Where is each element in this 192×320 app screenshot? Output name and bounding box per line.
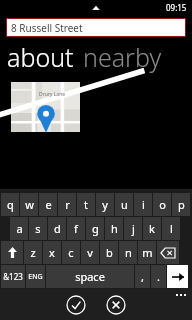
staticText: .: [157, 269, 160, 284]
button[interactable]: l: [162, 217, 180, 240]
button[interactable]: f: [67, 217, 85, 240]
button[interactable]: q: [1, 193, 19, 216]
staticText: n: [125, 245, 132, 260]
staticText: ENG: [28, 272, 43, 282]
staticText: ,: [141, 269, 144, 284]
staticText: o: [159, 197, 166, 212]
button[interactable]: j: [124, 217, 142, 240]
button[interactable]: m: [138, 241, 156, 264]
button[interactable]: d: [48, 217, 66, 240]
button[interactable]: k: [143, 217, 161, 240]
button[interactable]: [167, 265, 188, 288]
button[interactable]: n: [119, 241, 137, 264]
staticText: h: [111, 221, 118, 236]
staticText: v: [87, 245, 93, 260]
button[interactable]: z: [24, 241, 42, 264]
staticText: i: [142, 197, 145, 212]
button[interactable]: h: [105, 217, 123, 240]
button[interactable]: p: [172, 193, 190, 216]
button[interactable]: i: [134, 193, 152, 216]
button[interactable]: v: [81, 241, 99, 264]
button[interactable]: o: [153, 193, 171, 216]
staticText: t: [84, 197, 88, 212]
button[interactable]: x: [43, 241, 61, 264]
button[interactable]: s: [29, 217, 47, 240]
staticText: p: [178, 197, 185, 212]
staticText: e: [45, 197, 52, 212]
button[interactable]: Accept: [65, 294, 87, 316]
button[interactable]: b: [100, 241, 118, 264]
button[interactable]: More options: [176, 294, 186, 296]
button[interactable]: e: [39, 193, 57, 216]
staticText: l: [170, 221, 173, 236]
staticText: 09:15: [166, 2, 187, 13]
button[interactable]: space: [46, 265, 134, 288]
staticText: s: [35, 221, 41, 236]
staticText: x: [49, 245, 55, 260]
staticText: r: [65, 197, 70, 212]
staticText: q: [7, 197, 14, 212]
staticText: b: [106, 245, 113, 260]
button[interactable]: Cancel: [105, 294, 127, 316]
button[interactable]: a: [10, 217, 28, 240]
staticText: &123: [3, 271, 23, 282]
button[interactable]: [1, 241, 23, 264]
button[interactable]: ENG: [26, 265, 45, 288]
staticText: w: [25, 197, 34, 212]
staticText: 8 Russell Street: [11, 21, 83, 35]
staticText: c: [68, 245, 74, 260]
staticText: z: [30, 245, 36, 260]
staticText: y: [102, 197, 108, 212]
staticText: a: [16, 221, 23, 236]
button[interactable]: about: [7, 40, 74, 74]
staticText: Drury Lane: [39, 91, 66, 98]
button[interactable]: .: [151, 265, 166, 288]
button[interactable]: Map thumbnail: [11, 82, 80, 132]
staticText: g: [92, 221, 99, 236]
button[interactable]: w: [20, 193, 38, 216]
button[interactable]: y: [96, 193, 114, 216]
button[interactable]: &123: [1, 265, 25, 288]
staticText: f: [74, 221, 78, 236]
staticText: j: [132, 221, 135, 236]
staticText: k: [149, 221, 155, 236]
button[interactable]: ,: [135, 265, 150, 288]
staticText: d: [54, 221, 61, 236]
button[interactable]: c: [62, 241, 80, 264]
button[interactable]: 8 Russell Street: [6, 18, 186, 37]
staticText: space: [75, 269, 105, 284]
button[interactable]: [157, 241, 179, 264]
staticText: m: [142, 245, 153, 260]
button[interactable]: u: [115, 193, 133, 216]
button[interactable]: nearby: [83, 40, 162, 74]
staticText: u: [121, 197, 128, 212]
button[interactable]: t: [77, 193, 95, 216]
button[interactable]: r: [58, 193, 76, 216]
button[interactable]: g: [86, 217, 104, 240]
